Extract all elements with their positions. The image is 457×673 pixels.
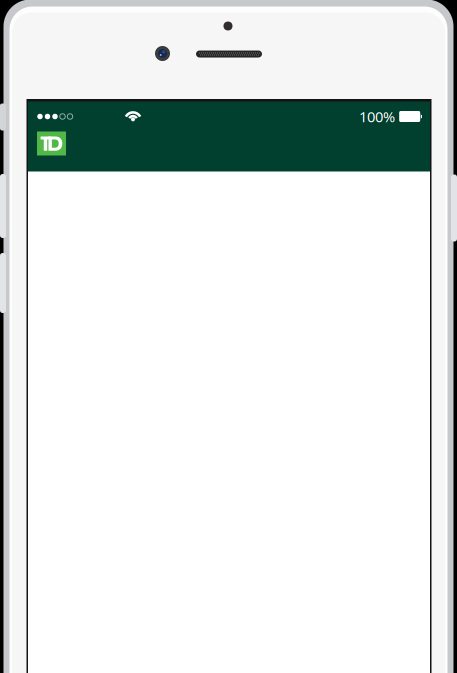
- button[interactable]: TD home: [28, 130, 75, 171]
- staticText: 100%: [359, 107, 395, 126]
